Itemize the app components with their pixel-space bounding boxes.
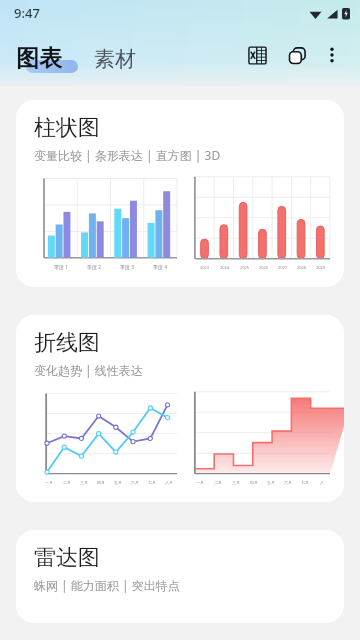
staticText: 折线图 bbox=[34, 329, 100, 357]
staticText: 雷达图 bbox=[34, 544, 100, 572]
staticText: 蛛网 | 能力面积 | 突出特点 bbox=[34, 577, 180, 593]
staticText: 2028 bbox=[297, 265, 307, 270]
staticText: 四月 bbox=[250, 480, 258, 485]
staticText: 六月 bbox=[131, 480, 139, 485]
staticText: 季度 4 bbox=[153, 264, 168, 271]
staticText: 六月 bbox=[284, 480, 292, 485]
staticText: 二月 bbox=[214, 480, 222, 485]
staticText: 柱状图 bbox=[34, 114, 100, 142]
staticText: 2024 bbox=[220, 265, 230, 270]
staticText: 2027 bbox=[278, 265, 288, 270]
staticText: 季度 1 bbox=[54, 264, 69, 271]
staticText: 七月 bbox=[301, 480, 309, 485]
staticText: 四月 bbox=[97, 480, 105, 485]
button[interactable]: 折线图 bbox=[16, 315, 344, 502]
staticText: 图表 bbox=[16, 44, 62, 73]
staticText: 变量比较 | 条形表达 | 直方图 | 3D bbox=[34, 147, 221, 163]
staticText: 八月 bbox=[165, 480, 173, 485]
staticText: 三月 bbox=[232, 480, 240, 485]
button[interactable]: Export to Excel bbox=[240, 38, 274, 72]
staticText: 一月 bbox=[196, 480, 204, 485]
staticText: 素材 bbox=[94, 46, 136, 72]
button[interactable]: 素材 bbox=[94, 46, 136, 73]
button[interactable]: 图表 bbox=[16, 38, 78, 73]
staticText: 2029 bbox=[316, 265, 326, 270]
button[interactable]: 雷达图 bbox=[16, 530, 344, 623]
staticText: 五月 bbox=[114, 480, 122, 485]
staticText: 季度 2 bbox=[87, 264, 102, 271]
staticText: 变化趋势 | 线性表达 bbox=[34, 362, 143, 378]
staticText: 三月 bbox=[80, 480, 88, 485]
button[interactable]: Layers bbox=[280, 38, 314, 72]
staticText: 2026 bbox=[259, 265, 269, 270]
staticText: 五月 bbox=[267, 480, 275, 485]
staticText: 2025 bbox=[240, 265, 250, 270]
staticText: 八 bbox=[320, 480, 324, 485]
staticText: 季度 3 bbox=[120, 264, 135, 271]
staticText: 一月 bbox=[45, 480, 53, 485]
staticText: 9:47 bbox=[14, 4, 40, 22]
staticText: 七月 bbox=[148, 480, 156, 485]
button[interactable]: More options bbox=[316, 39, 348, 71]
staticText: 2023 bbox=[200, 265, 210, 270]
staticText: 二月 bbox=[63, 480, 71, 485]
button[interactable]: 柱状图 bbox=[16, 100, 344, 287]
